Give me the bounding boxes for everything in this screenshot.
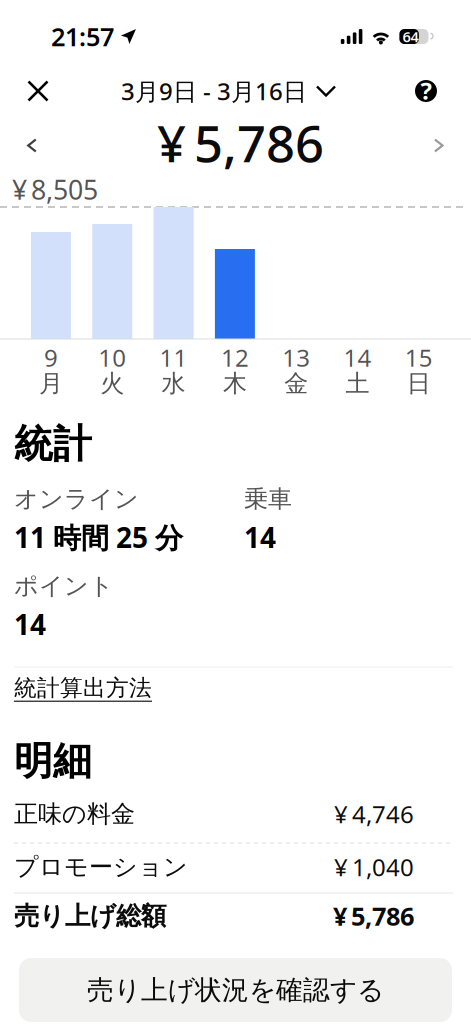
staticText: 15 [405,342,433,373]
staticText: 統計算出方法 [14,674,152,702]
staticText: 金 [284,369,308,398]
staticText: 月 [39,369,63,398]
staticText: 21:57 [51,20,114,53]
button[interactable]: 売り上げ状況を確認する [19,958,452,1022]
staticText: 統計 [14,420,92,468]
staticText: 14 [14,606,46,643]
staticText: 64 [402,27,418,46]
button[interactable]: 3月9日 - 3月16日 [121,69,335,113]
staticText: ¥ 1,040 [334,851,414,883]
staticText: 10 [98,342,126,373]
staticText: ¥ 4,746 [334,798,414,830]
staticText: 12 [221,342,249,373]
staticText: 3月9日 - 3月16日 [121,75,307,107]
button[interactable]: 統計算出方法 [0,667,471,709]
staticText: 14 [244,519,276,556]
staticText: 11 時間 25 分 [14,519,183,556]
staticText: ¥ 5,786 [333,899,414,933]
staticText: 売り上げ総額 [14,900,166,931]
staticText: 水 [162,369,186,398]
staticText: 木 [223,369,247,398]
staticText: 明細 [14,737,92,785]
button[interactable]: ヘルプ [404,69,448,113]
staticText: 日 [407,369,431,398]
staticText: 正味の料金 [14,799,135,829]
staticText: ¥ 8,505 [12,172,98,207]
button[interactable]: 次の週 [417,122,461,168]
button[interactable]: 閉じる [14,69,62,113]
staticText: オンライン [14,484,139,514]
staticText: ? [420,75,431,106]
staticText: プロモーション [14,852,188,882]
staticText: 14 [343,342,371,373]
staticText: 13 [282,342,310,373]
staticText: ポイント [14,571,114,601]
staticText: 11 [160,342,188,373]
staticText: ¥ 5,786 [157,109,324,176]
staticText: 乗車 [244,484,292,514]
staticText: 売り上げ状況を確認する [87,974,384,1006]
button[interactable]: 前の週 [10,122,54,168]
staticText: 9 [44,342,58,373]
staticText: 土 [345,369,369,398]
staticText: 火 [100,369,124,398]
